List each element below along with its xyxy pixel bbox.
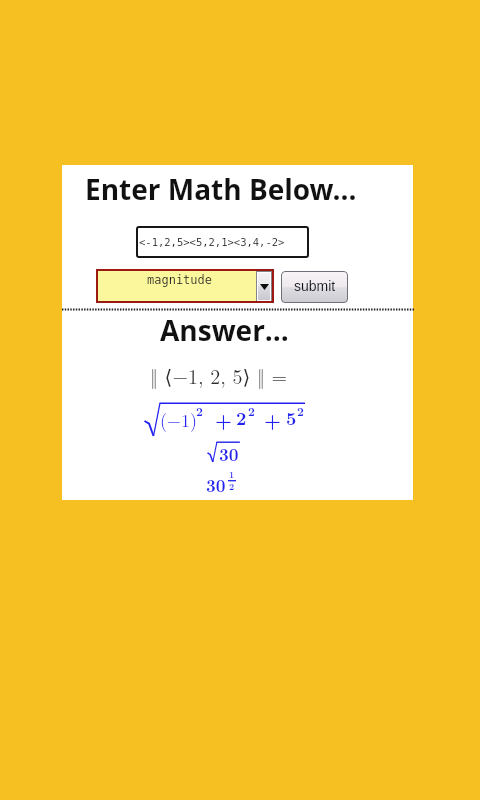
staticText: 1 [229,468,235,481]
staticText: 2 [196,402,203,419]
staticText: ‖ ⟨−1, 2, 5⟩ ‖ = [150,361,288,389]
staticText: Answer... [160,311,289,349]
staticText: 2 [229,480,235,493]
staticText: 2 [236,405,247,431]
staticText: (−1) [160,407,198,433]
button[interactable]: magnitude [96,269,274,303]
staticText: 30 [206,473,226,497]
staticText: 2 [297,402,304,419]
button[interactable]: <-1,2,5><5,2,1><3,4,-2> [136,226,309,258]
staticText: <-1,2,5><5,2,1><3,4,-2> [139,236,285,248]
staticText: + [264,405,281,432]
staticText: Enter Math Below... [85,170,357,208]
staticText: magnitude [147,273,213,287]
staticText: submit [294,278,336,294]
other: Open operation list [258,273,270,300]
button[interactable]: submit [281,271,348,303]
staticText: 30 [219,442,239,466]
staticText: + [215,405,232,432]
staticText: 5 [286,405,297,431]
staticText: 2 [248,402,255,419]
